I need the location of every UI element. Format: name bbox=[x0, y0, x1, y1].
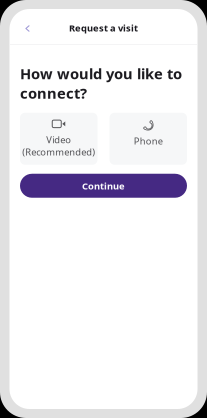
button[interactable]: Continue bbox=[20, 174, 187, 198]
staticText: (Recommended) bbox=[22, 146, 95, 158]
button[interactable]: Back bbox=[15, 16, 39, 40]
staticText: Video bbox=[46, 133, 71, 146]
staticText: How would you like to connect? bbox=[20, 64, 182, 103]
button[interactable]: Video bbox=[20, 113, 97, 165]
button[interactable]: Phone bbox=[109, 113, 187, 165]
staticText: Request a visit bbox=[69, 22, 138, 34]
staticText: Phone bbox=[134, 135, 163, 147]
staticText: Continue bbox=[82, 180, 125, 192]
